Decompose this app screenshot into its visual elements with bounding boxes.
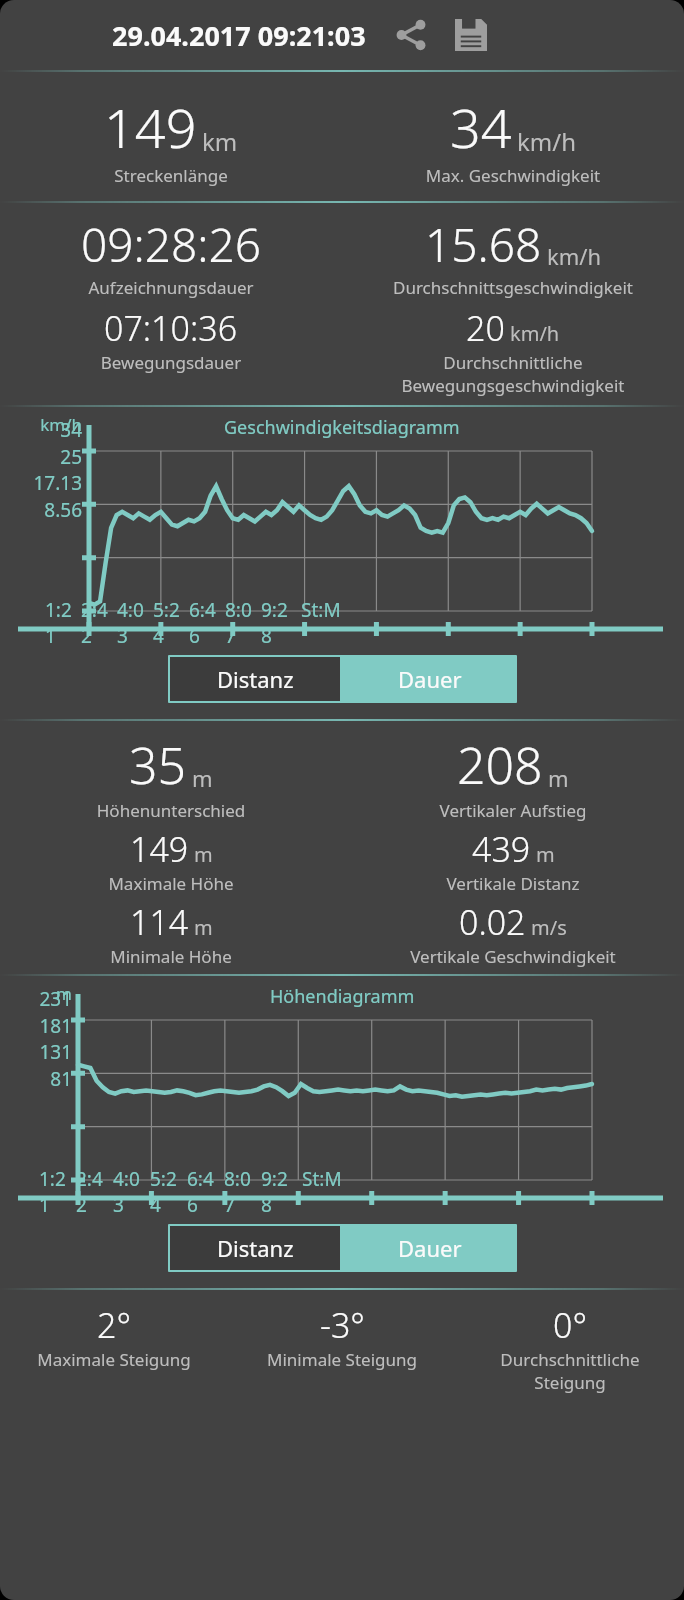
staticText: 114 <box>130 899 189 945</box>
staticText: 07:10:36 <box>104 305 238 351</box>
staticText: 15.68 <box>425 213 542 276</box>
staticText: m <box>192 763 213 793</box>
staticText: 2:42 <box>76 1166 113 1218</box>
staticText: Distanz <box>217 664 294 694</box>
staticText: km <box>202 125 238 158</box>
staticText: 1:21 <box>39 1166 76 1218</box>
staticText: m/s <box>531 914 567 941</box>
staticText: 0° <box>553 1302 587 1348</box>
staticText: km/h <box>547 241 602 271</box>
staticText: m <box>194 914 213 941</box>
staticText: m <box>0 982 72 1005</box>
staticText: Höhenunterschied <box>4 799 338 822</box>
button[interactable]: Distanz <box>170 657 340 701</box>
staticText: Geschwindigkeitsdiagramm <box>224 415 460 440</box>
staticText: 6:46 <box>189 597 225 649</box>
staticText: Minimale Höhe <box>4 945 338 968</box>
staticText: 6:46 <box>187 1166 224 1218</box>
button[interactable]: Share <box>388 12 434 58</box>
staticText: 1:21 <box>45 597 81 649</box>
staticText: Aufzeichnungsdauer <box>4 276 338 299</box>
staticText: Maximale Steigung <box>4 1348 224 1371</box>
staticText: 231 <box>0 986 72 1012</box>
staticText: 35 <box>129 731 187 799</box>
staticText: 25 <box>0 444 82 470</box>
staticText: 5:24 <box>150 1166 187 1218</box>
staticText: 4:03 <box>117 597 153 649</box>
staticText: 4:03 <box>113 1166 150 1218</box>
staticText: Durchschnittliche Bewegungsgeschwindigke… <box>346 351 680 397</box>
button[interactable]: Dauer <box>342 1224 517 1272</box>
staticText: 181 <box>0 1013 72 1039</box>
button[interactable]: Dauer <box>342 655 517 703</box>
staticText: 8:07 <box>224 1166 261 1218</box>
staticText: 2:42 <box>81 597 117 649</box>
staticText: Vertikaler Aufstieg <box>346 799 680 822</box>
staticText: Dauer <box>398 664 462 694</box>
staticText: m <box>194 841 213 868</box>
staticText: 81 <box>0 1066 72 1092</box>
staticText: 149 <box>130 826 189 872</box>
staticText: 439 <box>472 826 531 872</box>
staticText: 34 <box>450 90 512 164</box>
staticText: Höhendiagramm <box>270 984 415 1009</box>
staticText: 131 <box>0 1039 72 1065</box>
button[interactable]: Save <box>448 12 494 58</box>
staticText: 9:28 <box>261 597 297 649</box>
staticText: Streckenlänge <box>4 164 338 187</box>
staticText: 17.13 <box>0 470 82 496</box>
staticText: Max. Geschwindigkeit <box>346 164 680 187</box>
staticText: Distanz <box>217 1233 294 1263</box>
button[interactable]: Distanz <box>170 1226 340 1270</box>
staticText: St:M <box>301 597 341 623</box>
staticText: Maximale Höhe <box>4 872 338 895</box>
staticText: m <box>548 763 569 793</box>
staticText: 5:24 <box>153 597 189 649</box>
staticText: 9:28 <box>261 1166 298 1218</box>
staticText: 8:07 <box>225 597 261 649</box>
staticText: km/h <box>510 320 560 347</box>
staticText: Dauer <box>398 1233 462 1263</box>
staticText: km/h <box>517 125 577 158</box>
staticText: 0.02 <box>459 899 526 945</box>
staticText: 149 <box>104 90 197 164</box>
staticText: -3° <box>320 1302 365 1348</box>
staticText: 34 <box>0 417 82 443</box>
staticText: Minimale Steigung <box>232 1348 452 1371</box>
staticText: 2° <box>97 1302 131 1348</box>
staticText: 09:28:26 <box>81 213 262 276</box>
staticText: Vertikale Geschwindigkeit <box>346 945 680 968</box>
staticText: 208 <box>457 731 543 799</box>
staticText: St:M <box>302 1166 342 1192</box>
staticText: km/h <box>0 413 82 436</box>
staticText: Bewegungsdauer <box>4 351 338 374</box>
staticText: 8.56 <box>0 497 82 523</box>
staticText: m <box>536 841 555 868</box>
staticText: Vertikale Distanz <box>346 872 680 895</box>
staticText: 29.04.2017 09:21:03 <box>112 17 366 54</box>
staticText: 20 <box>466 305 505 351</box>
staticText: Durchschnittsgeschwindigkeit <box>346 276 680 299</box>
staticText: Durchschnittliche Steigung <box>460 1348 680 1394</box>
